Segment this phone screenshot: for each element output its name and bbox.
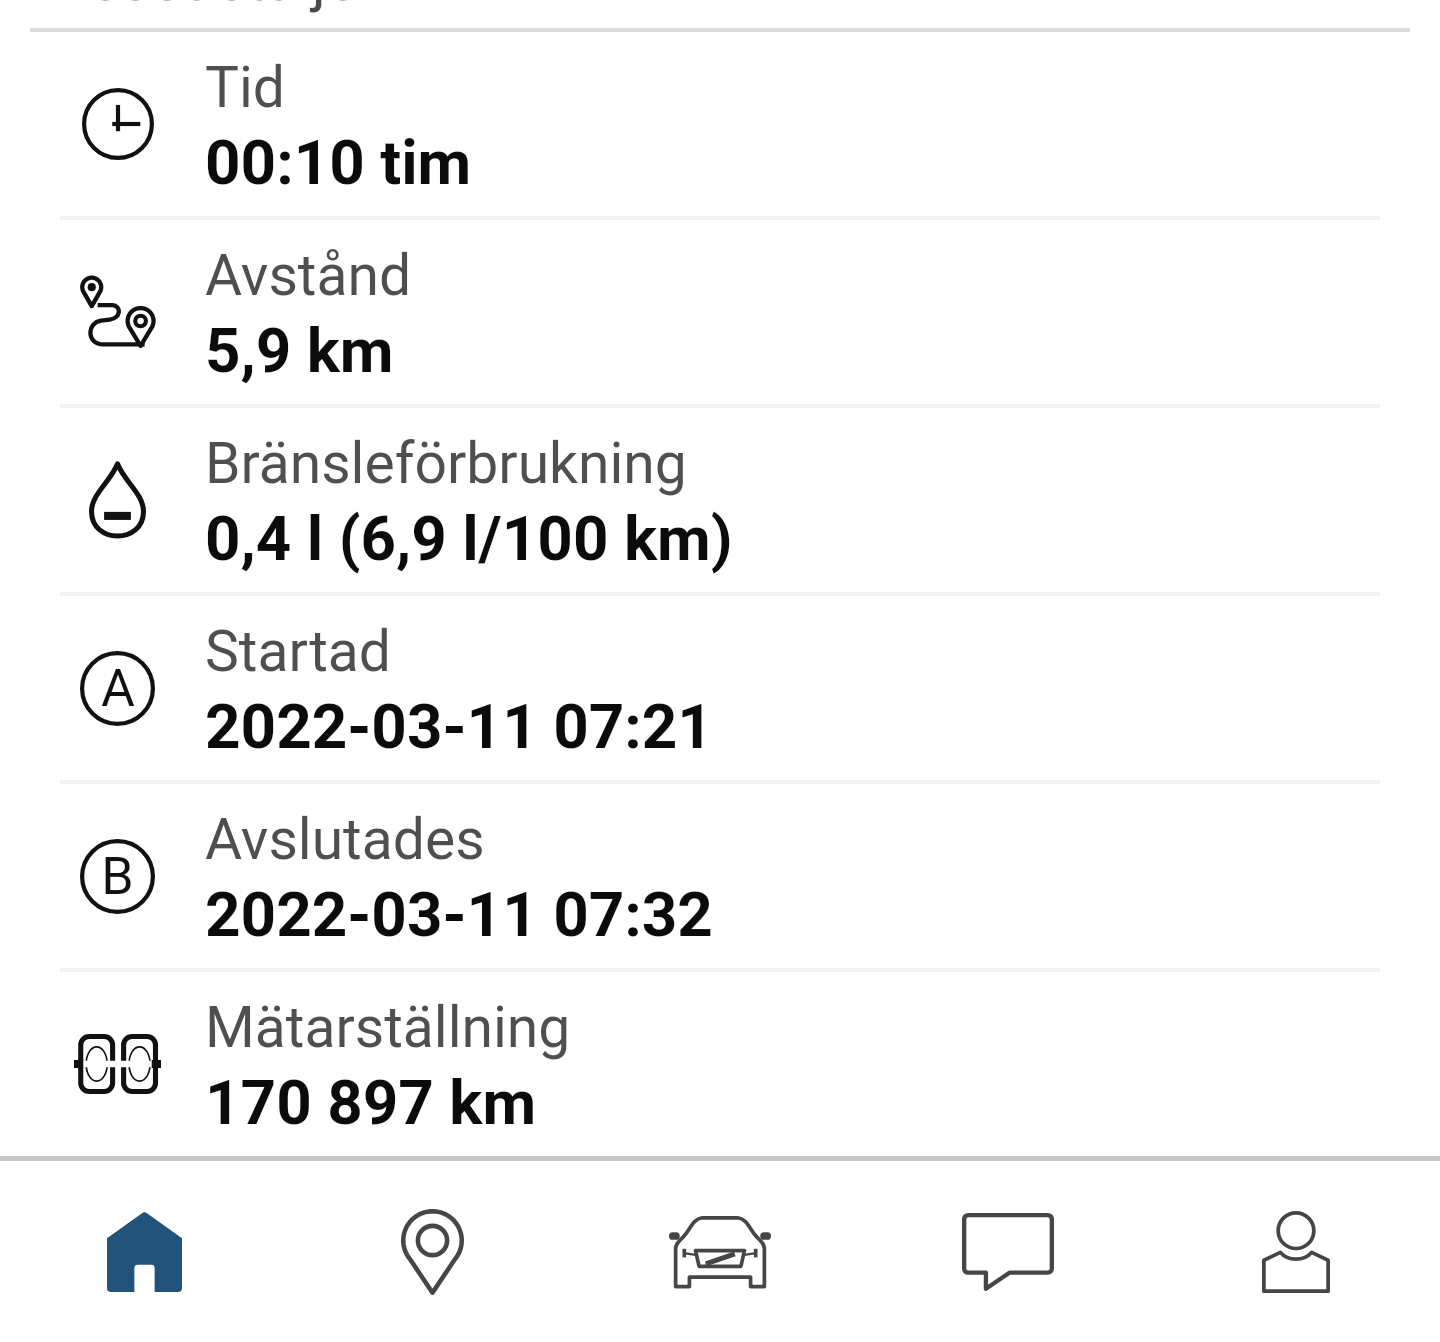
staticText: 2022-03-11 07:21: [205, 690, 713, 763]
staticText: 2022-03-11 07:32: [205, 878, 713, 951]
button[interactable]: Home: [0, 1161, 288, 1342]
staticText: 0,4 l (6,9 l/100 km): [205, 502, 733, 575]
button[interactable]: Avstånd: [0, 220, 1440, 404]
staticText: B: [101, 846, 134, 907]
staticText: Avstånd: [205, 242, 412, 309]
button[interactable]: Profile: [1152, 1161, 1440, 1342]
staticText: Mätarställning: [205, 994, 571, 1061]
staticText: A: [101, 658, 135, 719]
button[interactable]: B: [0, 784, 1440, 968]
button[interactable]: Bränsleförbrukning: [0, 408, 1440, 592]
button[interactable]: Map: [288, 1161, 576, 1342]
staticText: Resedetaljer: [52, 0, 378, 14]
staticText: Avslutades: [205, 806, 485, 873]
button[interactable]: A: [0, 596, 1440, 780]
staticText: 00:10 tim: [205, 126, 472, 199]
button[interactable]: Messages: [864, 1161, 1152, 1342]
staticText: 170 897 km: [205, 1066, 537, 1139]
button[interactable]: My car: [576, 1161, 864, 1342]
staticText: Bränsleförbrukning: [205, 430, 687, 497]
button[interactable]: Mätarställning: [0, 972, 1440, 1156]
staticText: Startad: [205, 618, 392, 685]
button[interactable]: Tid: [0, 32, 1440, 216]
staticText: 5,9 km: [205, 314, 394, 387]
staticText: Tid: [205, 54, 286, 121]
